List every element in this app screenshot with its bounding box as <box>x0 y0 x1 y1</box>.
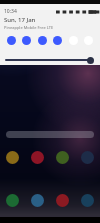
staticText: Pineapple Mobile Free LTE <box>4 25 54 30</box>
button[interactable]: Auto-rotate <box>53 36 62 45</box>
staticText: Sun, 17 Jan <box>4 16 36 24</box>
button[interactable]: Wi-Fi <box>7 36 16 45</box>
button[interactable]: Calculator <box>84 36 93 45</box>
button[interactable]: Phone <box>0 194 25 207</box>
staticText: 10:34 <box>4 8 17 15</box>
button[interactable]: Camera <box>75 194 100 207</box>
button[interactable]: Pineapple <box>0 151 25 164</box>
button[interactable]: Search <box>6 131 94 138</box>
button[interactable]: Flashlight <box>69 36 78 45</box>
button[interactable]: Messages <box>25 194 50 207</box>
button[interactable]: YouTube <box>50 194 75 207</box>
button[interactable]: Telegram <box>75 151 100 164</box>
button[interactable]: Maps <box>50 151 75 164</box>
button[interactable]: Sound <box>38 36 47 45</box>
button[interactable]: Bloom <box>25 151 50 164</box>
button[interactable]: Bluetooth <box>22 36 31 45</box>
